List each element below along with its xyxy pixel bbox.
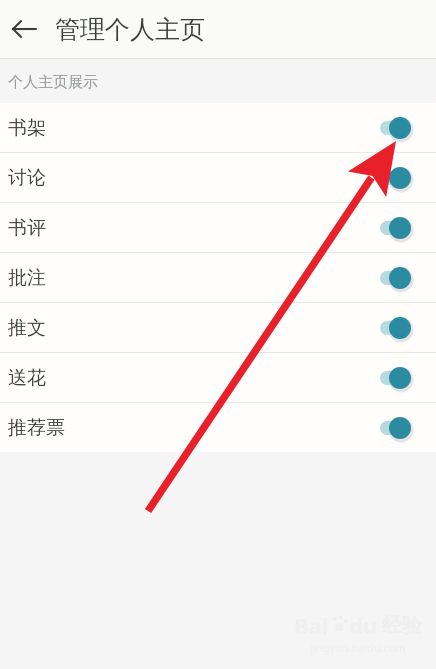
button[interactable]: Toggle xyxy=(372,313,412,343)
button[interactable]: 推文 xyxy=(0,303,436,352)
staticText: 讨论 xyxy=(8,166,372,190)
button[interactable]: Toggle xyxy=(372,163,412,193)
button[interactable]: Toggle xyxy=(372,363,412,393)
staticText: 推文 xyxy=(8,316,372,340)
button[interactable]: 书评 xyxy=(0,203,436,252)
button[interactable]: 送花 xyxy=(0,353,436,402)
staticText: 批注 xyxy=(8,266,372,290)
staticText: 送花 xyxy=(8,366,372,390)
button[interactable]: Toggle xyxy=(372,113,412,143)
staticText: 书评 xyxy=(8,216,372,240)
staticText: 管理个人主页 xyxy=(55,14,205,45)
button[interactable]: Toggle xyxy=(372,413,412,443)
staticText: 书架 xyxy=(8,116,372,140)
button[interactable]: Toggle xyxy=(372,263,412,293)
button[interactable]: 书架 xyxy=(0,103,436,152)
button[interactable]: 讨论 xyxy=(0,153,436,202)
button[interactable]: 推荐票 xyxy=(0,403,436,452)
staticText: 个人主页展示 xyxy=(8,73,98,92)
staticText: 推荐票 xyxy=(8,416,372,440)
button[interactable]: Toggle xyxy=(372,213,412,243)
button[interactable]: 批注 xyxy=(0,253,436,302)
button[interactable]: Back xyxy=(2,7,46,51)
